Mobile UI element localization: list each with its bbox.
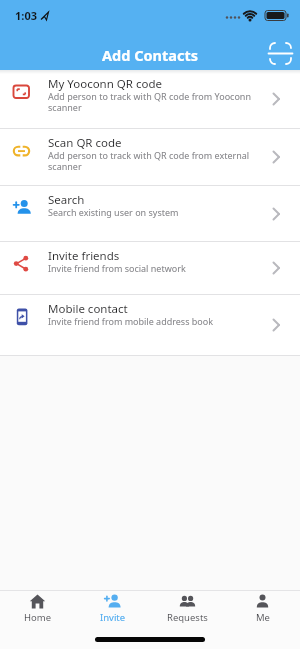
button[interactable]: Invite xyxy=(75,591,150,624)
button[interactable]: Me xyxy=(225,591,300,624)
button[interactable]: Search xyxy=(0,186,300,241)
staticText: Search existing user on system xyxy=(48,206,179,218)
button[interactable]: Mobile contact xyxy=(0,295,300,355)
staticText: Requests xyxy=(167,611,208,624)
button[interactable]: Scan QR code xyxy=(0,129,300,185)
staticText: Add Contacts xyxy=(102,45,198,65)
staticText: Add person to track with QR code from Yo… xyxy=(48,90,251,113)
staticText: Invite xyxy=(100,611,126,624)
button[interactable]: Invite friends xyxy=(0,242,300,294)
button[interactable]: Requests xyxy=(150,591,225,624)
staticText: Scan QR code xyxy=(48,135,122,151)
button[interactable]: Home xyxy=(0,591,75,624)
staticText: Home xyxy=(24,611,52,624)
button[interactable]: My Yooconn QR code xyxy=(0,70,300,128)
staticText: My Yooconn QR code xyxy=(48,76,162,92)
staticText: Invite friends xyxy=(48,248,120,264)
staticText: Mobile contact xyxy=(48,301,128,317)
staticText: Me xyxy=(256,611,270,624)
staticText: 1:03 xyxy=(15,8,37,23)
staticText: Invite friend from mobile address book xyxy=(48,315,214,327)
staticText: Invite friend from social network xyxy=(48,262,186,274)
button[interactable] xyxy=(265,38,295,68)
staticText: Search xyxy=(48,192,85,208)
staticText: Add person to track with QR code from ex… xyxy=(48,149,250,172)
